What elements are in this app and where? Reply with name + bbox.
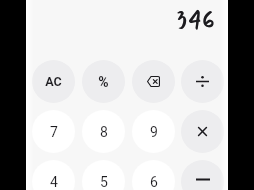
button[interactable]: 5 bbox=[82, 160, 125, 190]
staticText: 346 bbox=[176, 0, 215, 38]
button[interactable]: Minus bbox=[181, 160, 224, 190]
staticText: 4 bbox=[50, 174, 58, 190]
staticText: 7 bbox=[50, 124, 58, 140]
staticText: AC bbox=[45, 74, 62, 89]
button[interactable]: 6 bbox=[132, 160, 175, 190]
button[interactable]: Divide bbox=[181, 60, 224, 103]
button[interactable]: 4 bbox=[32, 160, 75, 190]
staticText: 6 bbox=[150, 174, 158, 190]
button[interactable]: % bbox=[82, 60, 125, 103]
staticText: % bbox=[98, 74, 109, 90]
button[interactable]: 7 bbox=[32, 110, 75, 153]
staticText: 8 bbox=[100, 124, 108, 140]
staticText: 346 bbox=[176, 0, 215, 38]
staticText: 9 bbox=[150, 124, 158, 140]
staticText: 5 bbox=[100, 174, 108, 190]
button[interactable]: AC bbox=[32, 60, 75, 103]
button[interactable]: Multiply bbox=[181, 110, 224, 153]
button[interactable]: Backspace bbox=[132, 60, 175, 103]
button[interactable]: 9 bbox=[132, 110, 175, 153]
button[interactable]: 8 bbox=[82, 110, 125, 153]
